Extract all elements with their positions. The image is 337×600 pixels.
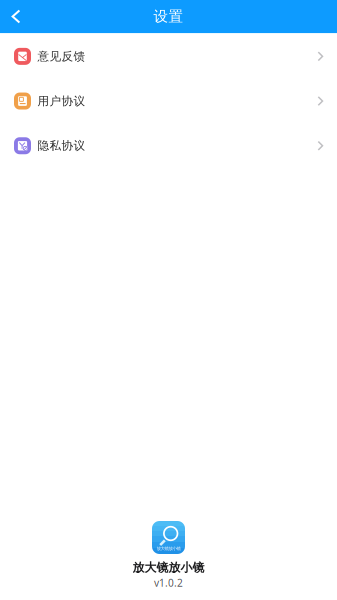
staticText: 用户协议 [37, 94, 85, 108]
staticText: 意见反馈 [37, 49, 85, 64]
staticText: 放大镜放小镜 [132, 560, 204, 575]
button[interactable]: Back [0, 1, 28, 31]
button[interactable]: 意见反馈 [0, 34, 337, 79]
button[interactable]: 用户协议 [0, 79, 337, 123]
staticText: 设置 [153, 7, 183, 26]
staticText: 放大镜放小镜 [156, 546, 180, 551]
staticText: v1.0.2 [154, 576, 183, 590]
staticText: 隐私协议 [37, 138, 85, 153]
button[interactable]: 隐私协议 [0, 123, 337, 168]
